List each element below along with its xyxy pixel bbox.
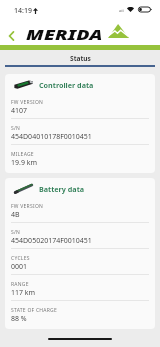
staticText: 0001: [11, 262, 28, 272]
staticText: Status: [70, 54, 91, 63]
staticText: 88 %: [11, 314, 27, 324]
staticText: STATE OF CHARGE: [11, 307, 58, 314]
staticText: 4107: [11, 106, 28, 116]
staticText: Controller data: [39, 80, 94, 90]
staticText: CYCLES: [11, 255, 30, 262]
staticText: FW VERSION: [11, 99, 44, 106]
staticText: Battery data: [39, 184, 85, 194]
staticText: 454D05020174F0010451: [11, 236, 92, 246]
staticText: 117 km: [11, 288, 36, 298]
button[interactable]: Status: [0, 50, 160, 65]
staticText: RANGE: [11, 281, 29, 288]
staticText: FW VERSION: [11, 203, 44, 210]
staticText: S/N: [11, 229, 21, 236]
staticText: S/N: [11, 125, 21, 132]
button[interactable]: Back: [1, 27, 22, 45]
staticText: MILEAGE: [11, 151, 34, 158]
staticText: 4B: [11, 210, 20, 220]
staticText: 454D04010178F0010451: [11, 132, 92, 142]
staticText: 19.9 km: [11, 158, 37, 168]
staticText: 14:19: [14, 6, 32, 16]
staticText: MERIDA: [26, 25, 104, 45]
